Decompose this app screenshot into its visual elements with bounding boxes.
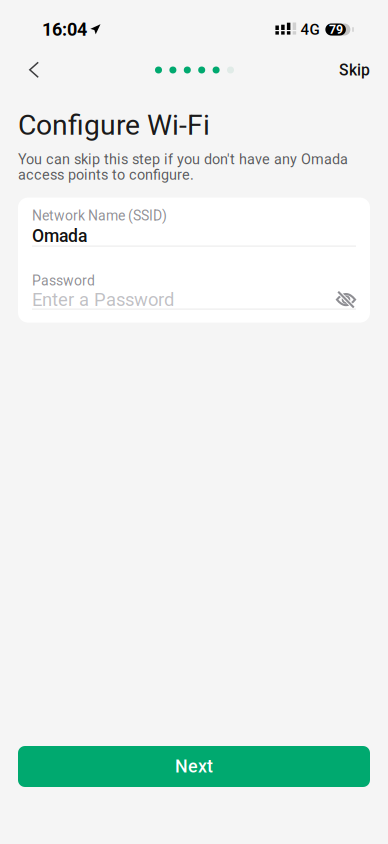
button[interactable]: Skip	[339, 55, 370, 85]
button[interactable]: Next	[18, 746, 370, 787]
staticText: 4G	[300, 21, 319, 38]
button[interactable]: Back	[17, 55, 51, 85]
staticText: 16:04	[42, 19, 87, 40]
staticText: Next	[175, 756, 213, 777]
staticText: You can skip this step if you don't have…	[18, 151, 348, 168]
staticText: Omada	[32, 226, 87, 246]
staticText: Configure Wi-Fi	[18, 108, 210, 141]
staticText: 79	[329, 22, 343, 37]
button[interactable]: Show password	[336, 291, 356, 308]
staticText: Network Name (SSID)	[32, 207, 167, 224]
staticText: Enter a Password	[32, 289, 174, 310]
staticText: Skip	[339, 61, 370, 79]
staticText: Password	[32, 272, 95, 289]
staticText: access points to configure.	[18, 166, 194, 183]
